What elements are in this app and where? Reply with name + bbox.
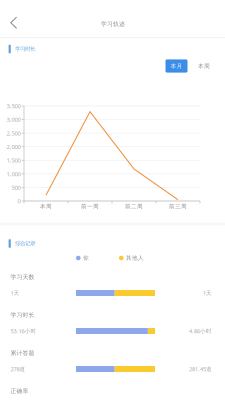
button[interactable]: Back (1, 9, 27, 37)
staticText: 综合记录 (15, 240, 35, 247)
staticText: 3,500 (6, 102, 20, 110)
staticText: 其他人 (126, 254, 144, 262)
staticText: 1天 (203, 289, 212, 297)
staticText: 2,500 (6, 129, 20, 137)
staticText: 累计答题 (10, 349, 34, 357)
staticText: 0 (17, 197, 20, 205)
staticText: 正确率 (10, 387, 28, 395)
staticText: 本月 (170, 62, 182, 70)
button[interactable]: 本月 (165, 59, 187, 73)
staticText: 前二周 (125, 203, 143, 210)
staticText: 1天 (10, 289, 19, 297)
staticText: 4.86小时 (189, 327, 212, 335)
staticText: 学习时长 (10, 311, 34, 319)
staticText: 本周 (198, 62, 210, 70)
button[interactable]: 本周 (193, 59, 215, 73)
staticText: 本周 (40, 203, 52, 210)
staticText: 278道 (10, 365, 25, 373)
staticText: 1,500 (6, 156, 20, 164)
staticText: 500 (11, 183, 20, 191)
staticText: 281.45道 (189, 365, 212, 373)
staticText: 学习轨迹 (101, 20, 125, 28)
staticText: 前一周 (81, 203, 99, 210)
staticText: 前三周 (169, 203, 187, 210)
staticText: 你 (83, 254, 89, 262)
staticText: 53.16小时 (10, 327, 36, 335)
staticText: 学习天数 (10, 273, 34, 281)
staticText: 3,000 (6, 116, 20, 124)
staticText: 1,000 (6, 170, 20, 178)
staticText: 学习时长 (15, 46, 35, 52)
staticText: 2,000 (6, 143, 20, 151)
